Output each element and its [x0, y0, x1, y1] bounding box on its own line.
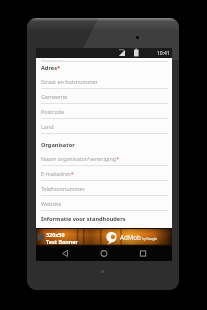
staticText: 320x50 — [46, 231, 65, 238]
button[interactable]: Recent apps — [127, 246, 172, 261]
staticText: Test Banner — [46, 238, 78, 245]
button[interactable]: Home — [82, 246, 127, 261]
staticText: 10:41 — [157, 50, 170, 57]
staticText: Informatie voor standhouders — [41, 215, 126, 223]
staticText: Website — [41, 200, 62, 207]
button[interactable]: 320x50 — [36, 228, 172, 246]
staticText: Adres* — [41, 64, 60, 72]
button[interactable]: Telefoonnummer — [36, 181, 172, 196]
staticText: Organisator — [41, 141, 75, 149]
staticText: E-mailadres* — [41, 170, 74, 177]
staticText: Voornaam — [41, 58, 64, 61]
staticText: Telefoonnummer — [41, 185, 85, 192]
button[interactable]: Back — [36, 246, 82, 261]
button[interactable]: Naam organisator/vereniging* — [36, 151, 172, 166]
button[interactable]: Straat en huisnummer — [36, 74, 172, 89]
staticText: Gemeente — [41, 93, 68, 100]
button[interactable]: Land — [36, 119, 172, 134]
staticText: Postcode — [41, 108, 65, 115]
staticText: Naam organisator/vereniging* — [41, 155, 120, 162]
staticText: AdMob — [120, 233, 141, 241]
button[interactable]: Website — [36, 196, 172, 211]
staticText: Land — [41, 123, 54, 130]
button[interactable]: E-mailadres* — [36, 166, 172, 181]
button[interactable]: Postcode — [36, 104, 172, 119]
staticText: by Google — [142, 237, 158, 241]
staticText: Straat en huisnummer — [41, 78, 98, 85]
button[interactable]: Gemeente — [36, 89, 172, 104]
